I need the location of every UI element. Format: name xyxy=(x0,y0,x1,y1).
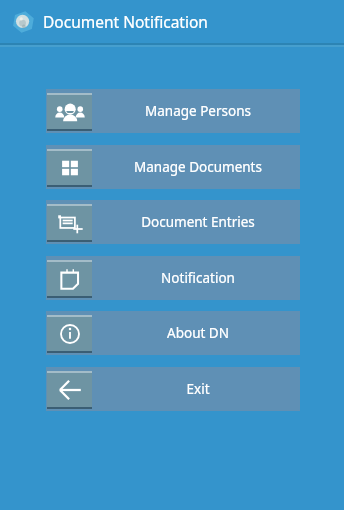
staticText: About DN xyxy=(167,324,229,342)
button[interactable]: Notification xyxy=(46,256,300,300)
staticText: Manage Documents xyxy=(134,158,262,176)
button[interactable]: Document Entries xyxy=(46,200,300,244)
other: App icon xyxy=(12,11,34,33)
button[interactable]: Manage Documents xyxy=(46,145,300,189)
staticText: Document Notification xyxy=(43,11,208,32)
staticText: Notification xyxy=(161,269,235,287)
button[interactable]: Manage Persons xyxy=(46,89,300,133)
button[interactable]: Exit xyxy=(46,367,300,411)
staticText: Exit xyxy=(186,380,210,398)
button[interactable]: About DN xyxy=(46,311,300,355)
staticText: Manage Persons xyxy=(145,102,251,120)
staticText: Document Entries xyxy=(141,213,255,231)
